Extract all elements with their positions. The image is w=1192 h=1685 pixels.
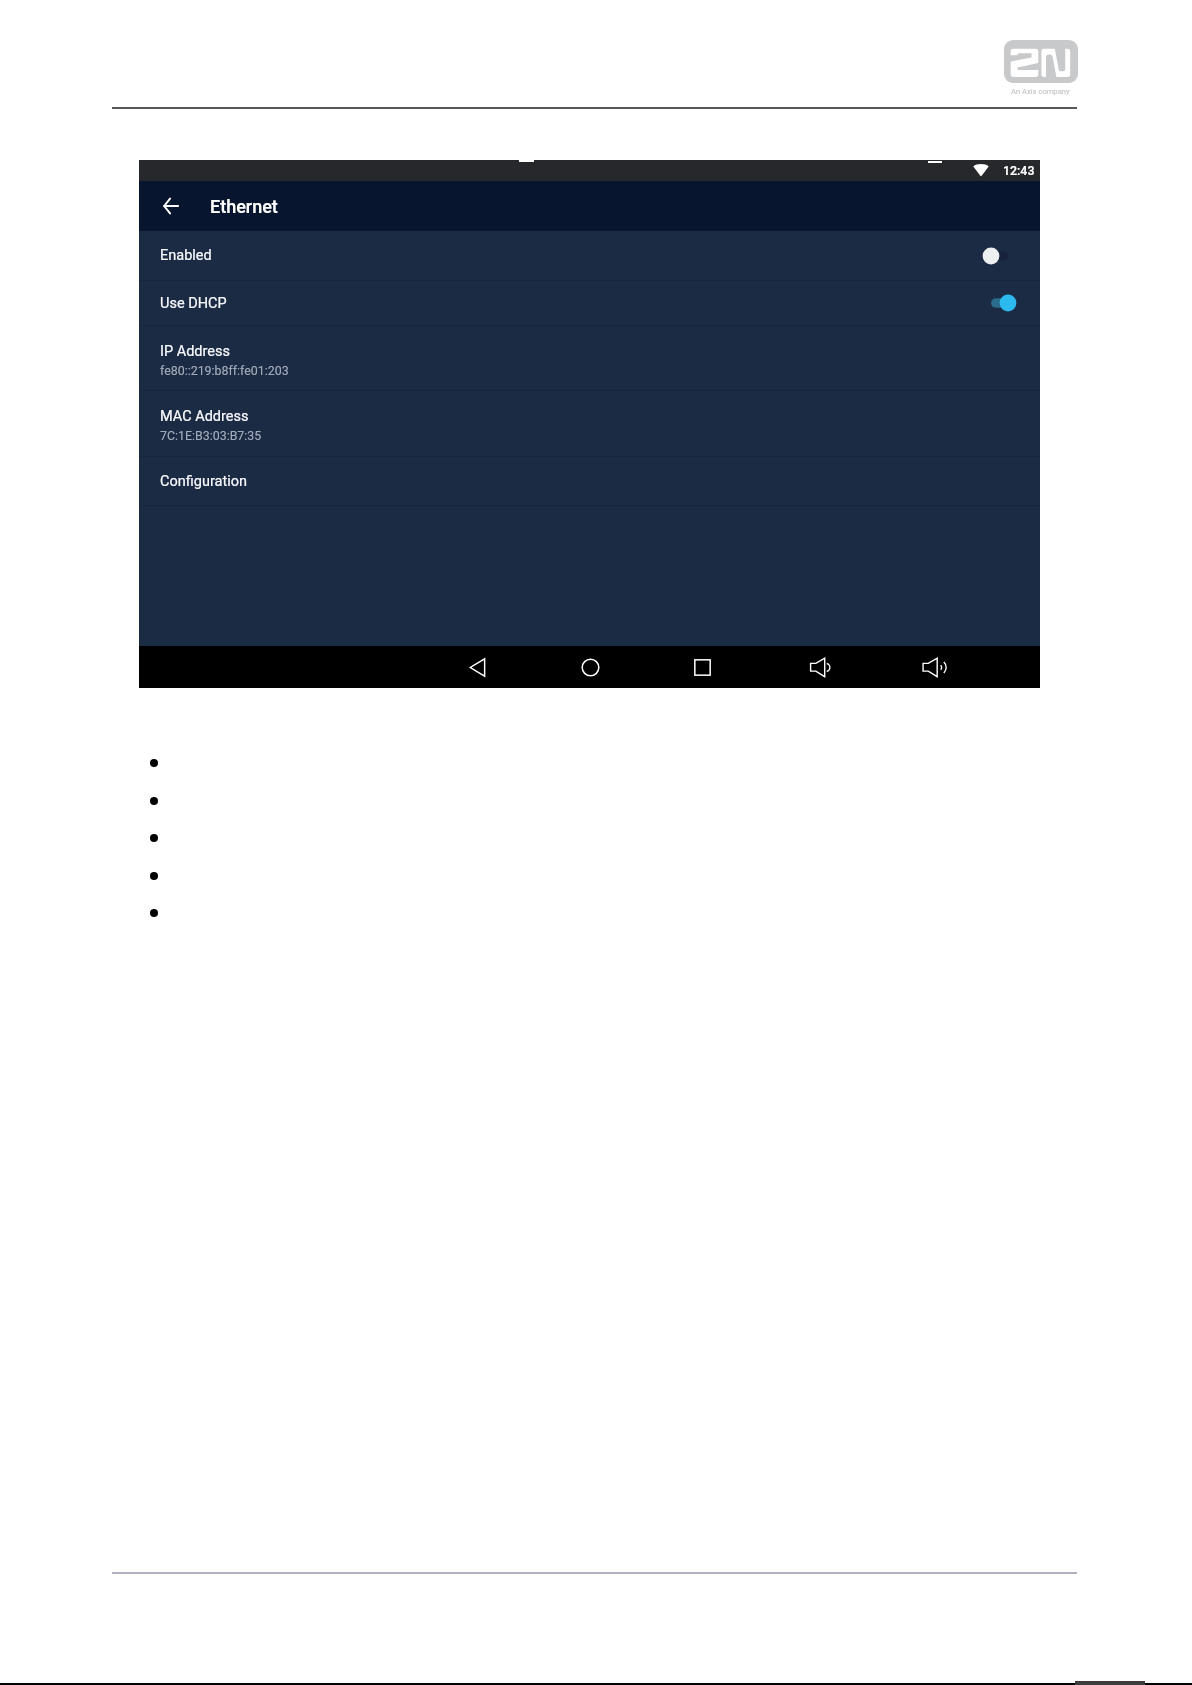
staticText: Ethernet	[210, 196, 278, 217]
staticText: Enabled	[160, 247, 212, 264]
button[interactable]: Enabled	[139, 231, 1040, 280]
button[interactable]: Configuration	[139, 457, 1040, 505]
button[interactable]: Volume down	[797, 646, 841, 688]
staticText: Configuration	[160, 473, 247, 490]
staticText: Use DHCP	[160, 295, 227, 312]
button[interactable]: Use DHCP	[139, 281, 1040, 325]
button[interactable]: IP Address	[139, 326, 1040, 390]
staticText: An Axis company	[1011, 87, 1070, 96]
staticText: 12:43	[1003, 163, 1035, 178]
staticText: IP Address	[160, 343, 230, 360]
button[interactable]: Back	[149, 181, 193, 231]
staticText: fe80::219:b8ff:fe01:203	[160, 363, 289, 378]
staticText: 7C:1E:B3:03:B7:35	[160, 428, 262, 443]
button[interactable]: Volume up	[912, 646, 956, 688]
staticText: MAC Address	[160, 408, 249, 425]
button[interactable]: Back	[455, 646, 499, 688]
button[interactable]: Home	[568, 646, 612, 688]
button[interactable]: MAC Address	[139, 391, 1040, 456]
button[interactable]: Recent apps	[680, 646, 724, 688]
